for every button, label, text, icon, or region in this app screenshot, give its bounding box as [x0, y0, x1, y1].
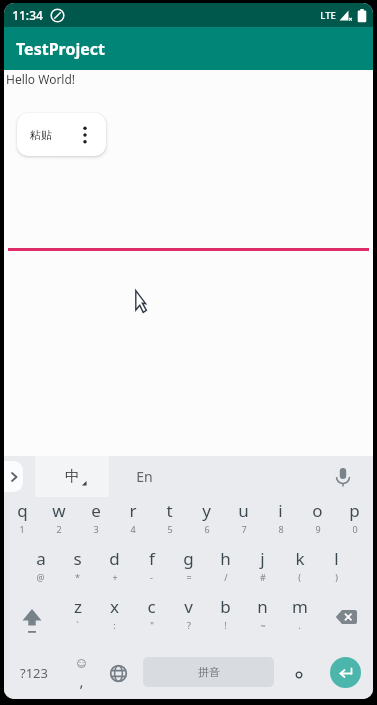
button[interactable]: c — [133, 593, 170, 641]
staticText: e — [91, 499, 101, 522]
button[interactable]: z — [59, 593, 96, 641]
staticText: ~ — [260, 619, 266, 631]
button[interactable]: d — [96, 545, 133, 593]
staticText: ?123 — [20, 664, 48, 682]
staticText: w — [52, 499, 66, 522]
staticText: b — [220, 595, 231, 618]
staticText: En — [136, 467, 153, 486]
staticText: : — [113, 619, 116, 631]
staticText: ( — [298, 571, 301, 583]
button[interactable]: 中 — [35, 456, 109, 497]
staticText: t — [166, 499, 173, 522]
staticText: 11:34 — [12, 7, 43, 23]
button[interactable]: r — [114, 497, 151, 545]
button[interactable]: n — [244, 593, 281, 641]
button[interactable]: ?123 — [4, 641, 63, 699]
button[interactable]: 拼音 — [136, 641, 281, 699]
button[interactable] — [318, 593, 373, 641]
staticText: s — [73, 547, 82, 570]
button[interactable]: k — [281, 545, 318, 593]
staticText: z — [74, 595, 82, 618]
staticText: / — [224, 571, 228, 583]
staticText: LTE — [320, 9, 336, 22]
button[interactable] — [281, 641, 317, 699]
staticText: m — [292, 595, 308, 618]
button[interactable]: t — [151, 497, 188, 545]
staticText: 6 — [204, 523, 210, 535]
staticText: n — [257, 595, 268, 618]
button[interactable]: p — [336, 497, 373, 545]
staticText: d — [109, 547, 120, 570]
button[interactable]: y — [188, 497, 225, 545]
staticText: x — [110, 595, 119, 618]
button[interactable]: i — [262, 497, 299, 545]
staticText: ` — [76, 619, 79, 631]
staticText: r — [129, 499, 137, 522]
staticText: Hello World! — [6, 71, 76, 87]
button[interactable]: En — [109, 456, 179, 497]
staticText: h — [220, 547, 231, 570]
staticText: = — [186, 571, 192, 583]
button[interactable]: x — [96, 593, 133, 641]
staticText: 5 — [167, 523, 173, 535]
button[interactable]: 粘贴 — [17, 113, 106, 156]
staticText: ? — [187, 619, 191, 631]
button[interactable]: m — [281, 593, 318, 641]
staticText: i — [278, 499, 283, 522]
staticText: 中 — [65, 467, 80, 486]
staticText: c — [147, 595, 156, 618]
staticText: 3 — [93, 523, 99, 535]
button[interactable]: l — [318, 545, 355, 593]
button[interactable] — [317, 641, 373, 699]
button[interactable]: a — [22, 545, 59, 593]
button[interactable]: , — [63, 641, 100, 699]
staticText: # — [260, 571, 266, 583]
staticText: 粘贴 — [30, 128, 52, 142]
staticText: o — [312, 499, 323, 522]
staticText: 2 — [56, 523, 62, 535]
button[interactable] — [331, 465, 355, 489]
button[interactable]: e — [77, 497, 114, 545]
button[interactable]: w — [40, 497, 77, 545]
button[interactable] — [4, 593, 59, 641]
button[interactable] — [4, 461, 23, 492]
staticText: - — [150, 571, 153, 583]
button[interactable]: j — [244, 545, 281, 593]
staticText: , — [79, 671, 84, 691]
staticText: 拼音 — [198, 665, 220, 679]
staticText: a — [36, 547, 46, 570]
button[interactable]: q — [4, 497, 40, 545]
staticText: p — [349, 499, 360, 522]
button[interactable]: o — [299, 497, 336, 545]
button[interactable]: u — [225, 497, 262, 545]
staticText: 0 — [352, 523, 358, 535]
staticText: . — [298, 619, 301, 631]
staticText: ! — [224, 619, 227, 631]
staticText: 1 — [19, 523, 25, 535]
staticText: u — [238, 499, 249, 522]
button[interactable]: g — [170, 545, 207, 593]
staticText: q — [17, 499, 28, 522]
button[interactable] — [100, 641, 136, 699]
staticText: y — [202, 499, 211, 522]
staticText: ) — [335, 571, 338, 583]
staticText: g — [183, 547, 194, 570]
staticText: 9 — [315, 523, 321, 535]
staticText: f — [149, 547, 155, 570]
button[interactable]: s — [59, 545, 96, 593]
staticText: 7 — [241, 523, 247, 535]
staticText: * — [75, 571, 80, 583]
staticText: j — [260, 547, 265, 570]
button[interactable]: h — [207, 545, 244, 593]
staticText: + — [112, 571, 118, 583]
staticText: @ — [36, 571, 45, 583]
button[interactable]: f — [133, 545, 170, 593]
staticText: TestProject — [16, 38, 105, 60]
button[interactable]: b — [207, 593, 244, 641]
staticText: v — [184, 595, 193, 618]
staticText: l — [334, 547, 339, 570]
staticText: k — [295, 547, 305, 570]
staticText: 4 — [130, 523, 136, 535]
button[interactable]: v — [170, 593, 207, 641]
staticText: 8 — [278, 523, 284, 535]
